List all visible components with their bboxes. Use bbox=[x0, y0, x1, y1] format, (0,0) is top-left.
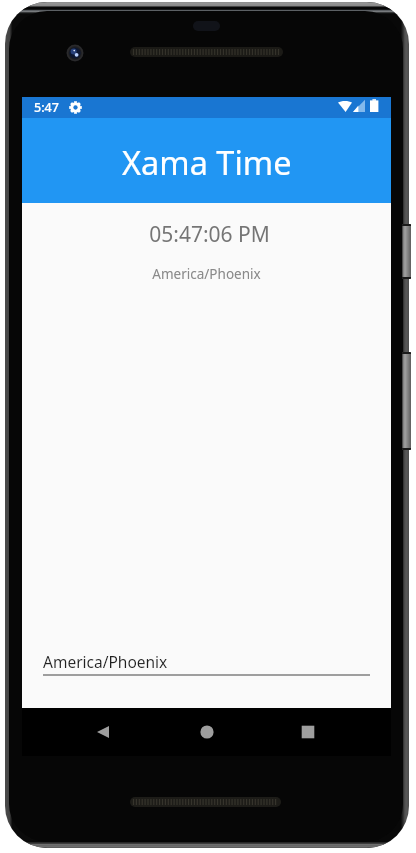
staticText: America/Phoenix bbox=[43, 651, 168, 672]
button[interactable]: Recent apps bbox=[284, 708, 332, 756]
button[interactable]: Back bbox=[79, 708, 127, 756]
button[interactable]: Xama Time bbox=[22, 118, 391, 203]
staticText: 5:47 bbox=[34, 99, 59, 116]
button[interactable]: America/Phoenix bbox=[43, 651, 370, 676]
staticText: 05:47:06 PM bbox=[28, 220, 391, 249]
button[interactable]: Home bbox=[183, 708, 231, 756]
staticText: America/Phoenix bbox=[22, 265, 391, 283]
staticText: Xama Time bbox=[122, 140, 292, 184]
